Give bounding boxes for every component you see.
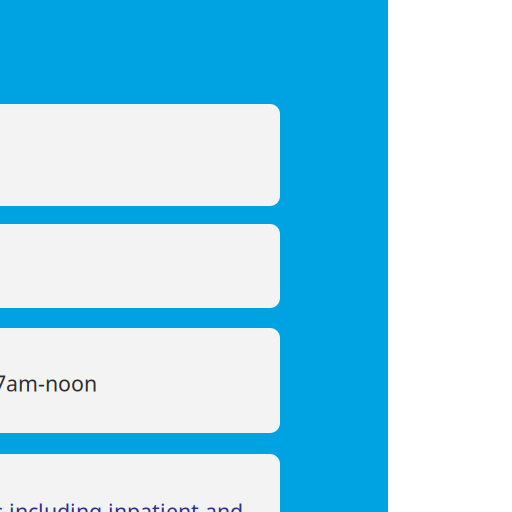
staticText: Open 7am-noon [0, 369, 97, 397]
button[interactable]: Emergency department [0, 104, 280, 206]
button[interactable]: Services including inpatient and outpati… [0, 454, 280, 512]
button[interactable]: Open 7am-noon [0, 328, 280, 433]
button[interactable]: Maternity unit [0, 224, 280, 308]
staticText: ervices including inpatient and [0, 497, 243, 512]
